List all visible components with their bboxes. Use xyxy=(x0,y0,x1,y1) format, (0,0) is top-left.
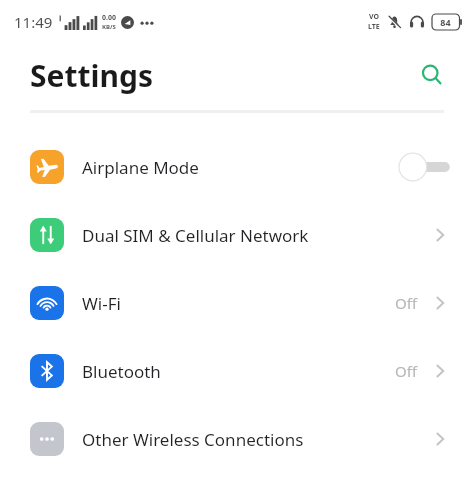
button[interactable]: Dual SIM & Cellular Network xyxy=(0,201,474,269)
staticText: Other Wireless Connections xyxy=(82,428,304,451)
staticText: LTE xyxy=(368,22,380,32)
button[interactable]: Airplane Mode toggle xyxy=(398,152,452,182)
staticText: 84 xyxy=(440,16,451,28)
staticText: Dual SIM & Cellular Network xyxy=(82,224,309,247)
button[interactable]: Wi-Fi xyxy=(0,269,474,337)
staticText: Bluetooth xyxy=(82,360,161,383)
staticText: Off xyxy=(395,293,418,313)
button[interactable]: Search xyxy=(412,55,452,95)
staticText: 11:49 xyxy=(14,12,53,32)
staticText: Airplane Mode xyxy=(82,156,199,179)
staticText: 0.00 xyxy=(102,13,116,23)
button[interactable]: Airplane Mode xyxy=(0,133,474,201)
staticText: Wi-Fi xyxy=(82,292,121,315)
button[interactable]: Other Wireless Connections xyxy=(0,405,474,473)
staticText: Settings xyxy=(30,55,153,96)
staticText: VO xyxy=(369,12,380,22)
staticText: KB/S xyxy=(102,23,116,31)
staticText: Off xyxy=(395,361,418,381)
button[interactable]: Bluetooth xyxy=(0,337,474,405)
